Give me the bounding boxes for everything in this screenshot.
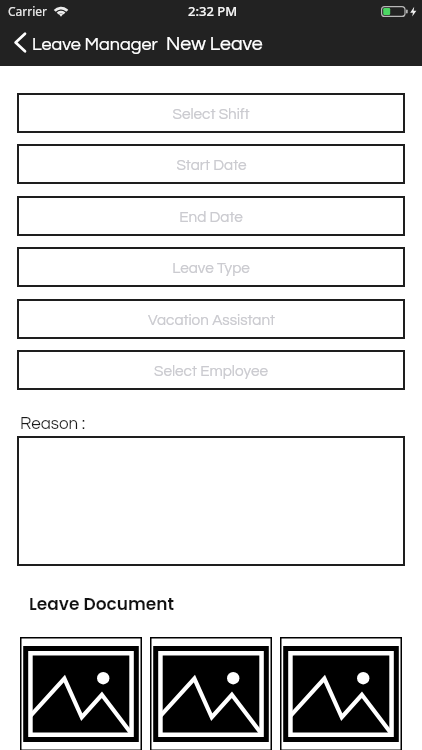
staticText: Reason : <box>20 415 86 433</box>
button[interactable]: End Date <box>17 196 405 236</box>
staticText: Carrier <box>8 3 48 19</box>
button[interactable] <box>17 436 405 566</box>
button[interactable]: Back <box>13 30 158 55</box>
staticText: Select Employee <box>154 363 268 379</box>
button[interactable]: Leave document image <box>150 637 272 750</box>
button[interactable]: Start Date <box>17 144 405 184</box>
staticText: End Date <box>179 209 243 225</box>
button[interactable]: Leave document image <box>20 637 142 750</box>
button[interactable]: Select Shift <box>17 93 405 133</box>
button[interactable]: Leave document image <box>280 637 402 750</box>
staticText: 2:32 PM <box>188 2 238 20</box>
other: Back <box>13 30 27 55</box>
button[interactable]: Leave Type <box>17 247 405 287</box>
staticText: Leave Type <box>172 260 250 276</box>
staticText: Leave Document <box>29 592 175 616</box>
staticText: Leave Manager <box>32 35 158 54</box>
button[interactable]: Vacation Assistant <box>17 299 405 339</box>
staticText: Start Date <box>176 157 247 173</box>
staticText: Vacation Assistant <box>148 312 275 328</box>
staticText: New Leave <box>166 34 263 54</box>
staticText: Select Shift <box>172 106 250 122</box>
button[interactable]: Select Employee <box>17 350 405 390</box>
